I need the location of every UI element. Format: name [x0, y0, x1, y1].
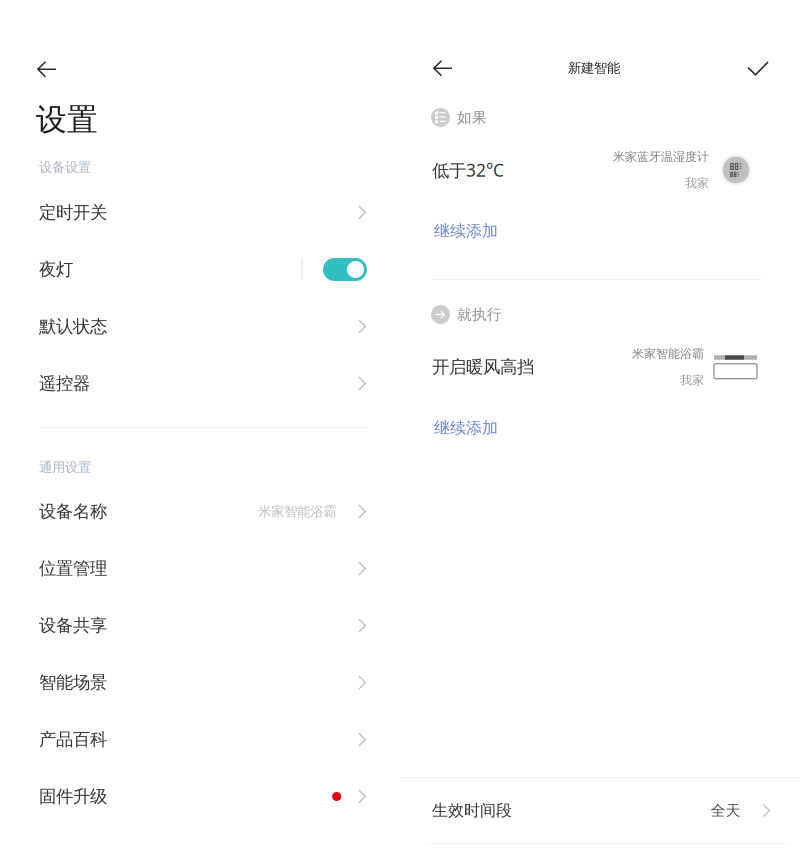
button[interactable]: 继续添加 — [432, 216, 500, 246]
button[interactable]: 开启暖风高挡 — [400, 345, 800, 389]
staticText: 米家蓝牙温湿度计 — [613, 149, 709, 164]
button[interactable]: 产品百科 — [0, 711, 400, 768]
staticText: 就执行 — [457, 305, 502, 323]
staticText: 生效时间段 — [432, 801, 512, 820]
button[interactable]: 设备共享 — [0, 597, 400, 654]
button[interactable]: 固件升级 — [0, 768, 400, 825]
button[interactable]: 定时开关 — [0, 184, 400, 241]
button[interactable]: 夜灯 — [0, 241, 400, 298]
button[interactable]: 低于32°C — [400, 148, 800, 192]
staticText: 位置管理 — [39, 558, 107, 579]
staticText: 智能场景 — [39, 672, 107, 693]
staticText: 新建智能 — [568, 60, 620, 76]
staticText: 默认状态 — [39, 316, 107, 337]
button[interactable]: 生效时间段 — [400, 778, 800, 843]
staticText: 设置 — [36, 101, 98, 139]
staticText: 开启暖风高挡 — [432, 356, 534, 378]
button[interactable]: 智能场景 — [0, 654, 400, 711]
staticText: 如果 — [457, 108, 487, 126]
staticText: 定时开关 — [39, 202, 107, 223]
staticText: 设备共享 — [39, 615, 107, 636]
staticText: 全天 — [711, 801, 741, 819]
button[interactable]: 默认状态 — [0, 298, 400, 355]
staticText: 继续添加 — [434, 221, 498, 241]
staticText: 产品百科 — [39, 729, 107, 750]
staticText: 我家 — [680, 373, 704, 388]
staticText: 继续添加 — [434, 418, 498, 438]
staticText: 遥控器 — [39, 373, 90, 394]
staticText: 米家智能浴霸 — [632, 346, 704, 361]
staticText: 我家 — [685, 176, 709, 191]
staticText: 固件升级 — [39, 786, 107, 807]
button[interactable]: 继续添加 — [432, 413, 500, 443]
button[interactable]: 位置管理 — [0, 540, 400, 597]
button[interactable]: Back — [30, 54, 64, 84]
staticText: 设备设置 — [39, 159, 91, 175]
staticText: 米家智能浴霸 — [258, 503, 336, 520]
button[interactable]: Back — [426, 53, 460, 83]
staticText: 夜灯 — [39, 259, 73, 280]
button[interactable]: 设备名称 — [0, 483, 400, 540]
button[interactable]: 遥控器 — [0, 355, 400, 412]
staticText: 低于32°C — [432, 158, 504, 181]
staticText: 设备名称 — [39, 501, 107, 522]
button[interactable]: Save — [740, 54, 776, 83]
staticText: 通用设置 — [39, 459, 91, 475]
